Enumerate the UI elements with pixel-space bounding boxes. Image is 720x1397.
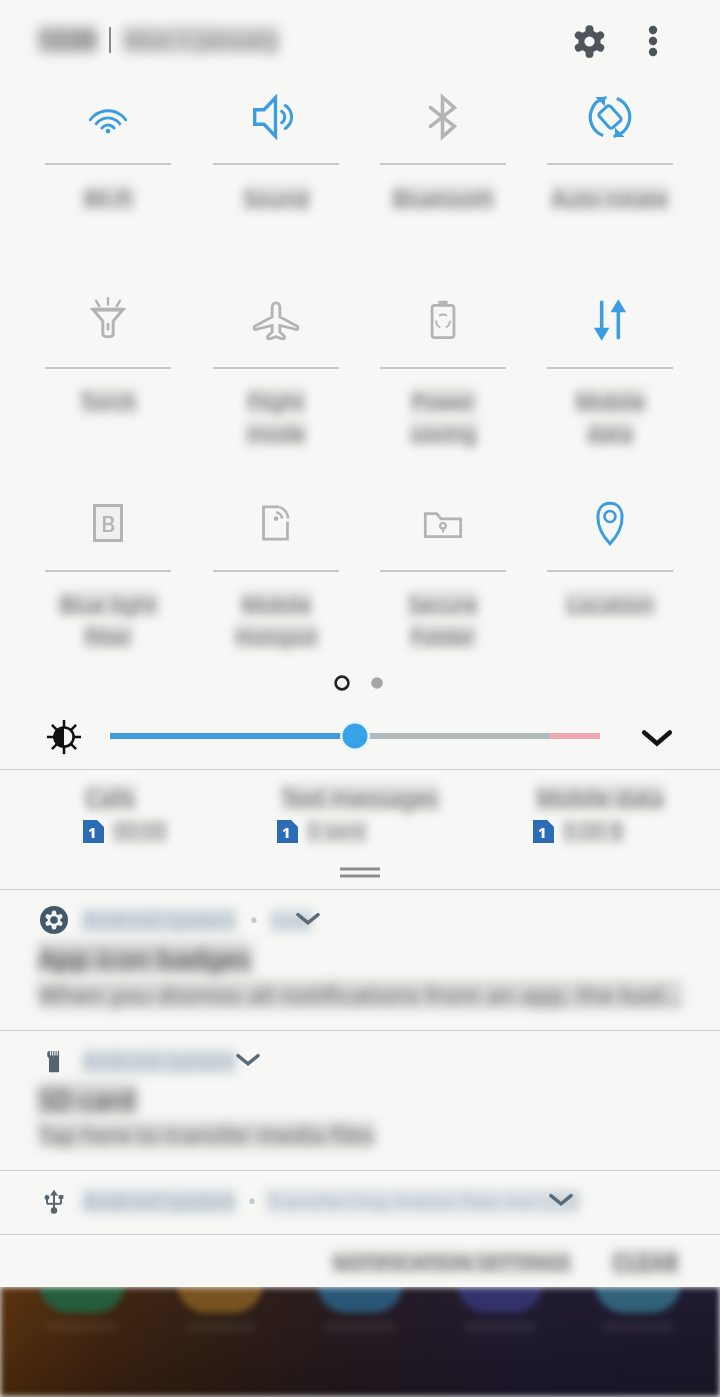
staticText: Secure — [408, 589, 478, 619]
button[interactable]: Mobile data — [480, 782, 720, 862]
button[interactable]: Sound — [242, 83, 310, 151]
button[interactable]: Android system — [0, 1031, 720, 1170]
button[interactable]: Bluetooth — [409, 83, 477, 151]
button[interactable]: Page 1 — [334, 675, 350, 691]
staticText: 1 — [88, 822, 97, 842]
button[interactable]: NOTIFICATION SETTINGS — [318, 1239, 585, 1285]
staticText: Transferring media files via USB — [266, 1187, 580, 1216]
staticText: Mobile — [241, 589, 312, 619]
button[interactable]: Expand notification — [290, 900, 326, 936]
staticText: Bluetooth — [392, 183, 495, 213]
staticText: SD card — [38, 1081, 136, 1118]
button[interactable]: Expand quick settings — [631, 711, 683, 763]
staticText: 00:00 — [113, 817, 167, 846]
staticText: Mon 1 January — [123, 24, 279, 55]
button[interactable]: Secure Folder — [409, 489, 477, 557]
button[interactable]: Torch — [74, 286, 142, 354]
staticText: NOTIFICATION SETTINGS — [332, 1249, 571, 1276]
staticText: Torch — [80, 386, 137, 416]
staticText: Android system — [82, 1187, 236, 1216]
button[interactable]: CLEAR — [598, 1239, 693, 1285]
staticText: Text messages — [281, 782, 439, 813]
staticText: When you dismiss all notifications from … — [38, 978, 682, 1011]
button[interactable]: Mobile Hotspot — [242, 489, 310, 557]
button[interactable]: Flight mode — [242, 286, 310, 354]
staticText: Tap here to transfer media files — [38, 1119, 375, 1150]
button[interactable]: Wi-Fi — [74, 83, 142, 151]
button[interactable]: Location — [576, 489, 644, 557]
staticText: B — [101, 508, 116, 538]
staticText: saving — [410, 418, 477, 448]
staticText: Hotspot — [235, 621, 318, 651]
button[interactable]: Text messages — [240, 782, 480, 862]
staticText: Calls — [85, 782, 136, 813]
staticText: 1 — [282, 822, 291, 842]
button[interactable]: Expand notification — [230, 1041, 266, 1077]
staticText: Power — [411, 386, 476, 416]
button[interactable]: Mobile data — [576, 286, 644, 354]
staticText: Mobile — [575, 386, 646, 416]
button[interactable]: Calls — [0, 782, 230, 862]
staticText: CLEAR — [612, 1247, 679, 1277]
staticText: Auto rotate — [551, 183, 669, 213]
staticText: mode — [246, 418, 306, 448]
staticText: Android system — [82, 1047, 236, 1076]
staticText: filter — [84, 621, 133, 651]
staticText: Blue light — [59, 589, 158, 619]
staticText: Android system — [82, 906, 236, 935]
staticText: Mobile data — [536, 782, 664, 813]
button[interactable]: Auto brightness — [38, 711, 90, 763]
button[interactable]: Power saving — [409, 286, 477, 354]
staticText: Flight — [247, 386, 305, 416]
button[interactable]: Android system — [0, 890, 720, 1030]
button[interactable]: Expand notification — [543, 1181, 579, 1217]
button[interactable]: Android system — [0, 1171, 720, 1234]
staticText: 0 sent — [307, 817, 367, 846]
staticText: 1 — [538, 822, 547, 842]
staticText: • — [250, 906, 258, 935]
staticText: now — [270, 906, 312, 935]
staticText: App icon badges — [38, 940, 252, 977]
staticText: data — [587, 418, 634, 448]
button[interactable]: Page 2 — [369, 675, 385, 691]
staticText: Sound — [243, 183, 310, 213]
staticText: Folder — [410, 621, 476, 651]
staticText: Location — [566, 589, 655, 619]
staticText: • — [248, 1187, 256, 1216]
button[interactable]: Quick settings — [563, 15, 615, 67]
button[interactable]: Brightness — [100, 716, 610, 756]
button[interactable]: More options — [627, 15, 679, 67]
staticText: 13:09 — [38, 24, 97, 55]
button[interactable]: Auto rotate — [576, 83, 644, 151]
staticText: 0.00 B — [563, 817, 624, 846]
staticText: Wi-Fi — [83, 183, 134, 213]
button[interactable]: Blue light filter — [74, 489, 142, 557]
